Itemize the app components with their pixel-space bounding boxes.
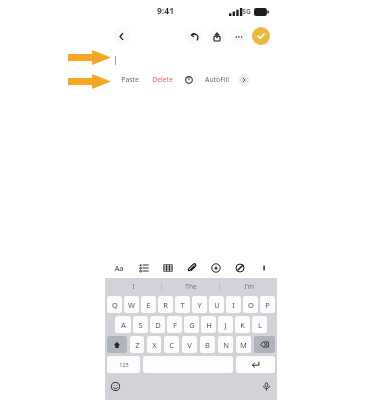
button[interactable]: Z bbox=[130, 336, 144, 353]
staticText: N bbox=[223, 340, 229, 350]
staticText: 5G bbox=[242, 7, 251, 16]
button[interactable]: Markup bbox=[232, 260, 248, 276]
button[interactable]: Q bbox=[107, 296, 122, 313]
button[interactable]: Delete bbox=[150, 75, 175, 84]
button[interactable]: H bbox=[201, 316, 216, 333]
button[interactable]: I'm bbox=[220, 278, 277, 294]
staticText: S bbox=[138, 320, 143, 330]
button[interactable]: Done bbox=[252, 27, 270, 45]
staticText: I bbox=[132, 282, 135, 291]
button[interactable]: G bbox=[184, 316, 199, 333]
button[interactable]: Format bbox=[184, 75, 194, 85]
staticText: Aa bbox=[114, 263, 124, 273]
button[interactable]: Return bbox=[236, 356, 275, 373]
button[interactable]: C bbox=[164, 336, 179, 353]
button[interactable]: E bbox=[141, 296, 156, 313]
button[interactable]: B bbox=[200, 336, 215, 353]
button[interactable]: I bbox=[226, 296, 241, 313]
staticText: 123 bbox=[119, 361, 129, 368]
button[interactable]: 123 bbox=[107, 356, 140, 373]
button[interactable]: Table bbox=[160, 260, 176, 276]
button[interactable]: W bbox=[124, 296, 139, 313]
staticText: O bbox=[248, 300, 254, 310]
staticText: C bbox=[169, 340, 174, 350]
staticText: Paste bbox=[121, 75, 139, 84]
button[interactable]: More bbox=[256, 260, 272, 276]
staticText: Delete bbox=[152, 75, 173, 84]
staticText: M bbox=[240, 340, 247, 350]
button[interactable]: List bbox=[136, 260, 152, 276]
button[interactable]: More options bbox=[230, 28, 247, 45]
staticText: J bbox=[224, 320, 227, 330]
staticText: D bbox=[155, 320, 161, 330]
button[interactable]: U bbox=[209, 296, 224, 313]
button[interactable]: L bbox=[252, 316, 267, 333]
staticText: B bbox=[205, 340, 210, 350]
staticText: U bbox=[214, 300, 220, 310]
staticText: A bbox=[121, 320, 126, 330]
button[interactable]: X bbox=[147, 336, 161, 353]
staticText: Q bbox=[112, 300, 118, 310]
staticText: V bbox=[187, 340, 192, 350]
button[interactable]: Paste bbox=[119, 75, 141, 84]
button[interactable]: Emoji bbox=[109, 380, 122, 393]
button[interactable]: Shift bbox=[107, 336, 127, 353]
staticText: G bbox=[189, 320, 195, 330]
button[interactable]: J bbox=[218, 316, 233, 333]
button[interactable]: Text style bbox=[111, 260, 127, 276]
button[interactable]: Backspace bbox=[254, 336, 275, 353]
staticText: T bbox=[180, 300, 185, 310]
staticText: K bbox=[240, 320, 245, 330]
button[interactable]: K bbox=[235, 316, 250, 333]
staticText: Z bbox=[135, 340, 140, 350]
staticText: AutoFill bbox=[205, 75, 229, 84]
button[interactable]: T bbox=[175, 296, 190, 313]
staticText: W bbox=[128, 300, 135, 310]
button[interactable]: Back bbox=[113, 28, 130, 45]
staticText: H bbox=[206, 320, 212, 330]
staticText: R bbox=[163, 300, 168, 310]
staticText: I'm bbox=[244, 282, 254, 291]
button[interactable]: F bbox=[167, 316, 182, 333]
button[interactable]: S bbox=[133, 316, 148, 333]
button[interactable]: D bbox=[150, 316, 165, 333]
button[interactable]: N bbox=[218, 336, 233, 353]
button[interactable]: Y bbox=[192, 296, 207, 313]
staticText: I bbox=[232, 300, 235, 310]
button[interactable]: Attach bbox=[184, 260, 200, 276]
button[interactable]: P bbox=[260, 296, 275, 313]
button[interactable]: Camera bbox=[208, 260, 224, 276]
button[interactable]: More bbox=[238, 74, 250, 86]
button[interactable]: Dictate bbox=[260, 380, 273, 393]
button[interactable]: I bbox=[105, 278, 161, 294]
button[interactable]: R bbox=[158, 296, 173, 313]
staticText: E bbox=[146, 300, 151, 310]
button[interactable]: O bbox=[243, 296, 258, 313]
button[interactable]: V bbox=[182, 336, 197, 353]
button[interactable]: A bbox=[115, 316, 131, 333]
button[interactable]: AutoFill bbox=[203, 75, 231, 84]
staticText: 9:41 bbox=[157, 5, 174, 17]
button[interactable]: Share bbox=[208, 28, 225, 45]
button[interactable]: The bbox=[162, 278, 219, 294]
button[interactable]: Undo bbox=[186, 28, 203, 45]
staticText: X bbox=[152, 340, 157, 350]
staticText: L bbox=[258, 320, 262, 330]
staticText: The bbox=[185, 282, 197, 291]
staticText: P bbox=[265, 300, 270, 310]
button[interactable]: M bbox=[236, 336, 251, 353]
staticText: F bbox=[173, 320, 177, 330]
staticText: Y bbox=[197, 300, 202, 310]
